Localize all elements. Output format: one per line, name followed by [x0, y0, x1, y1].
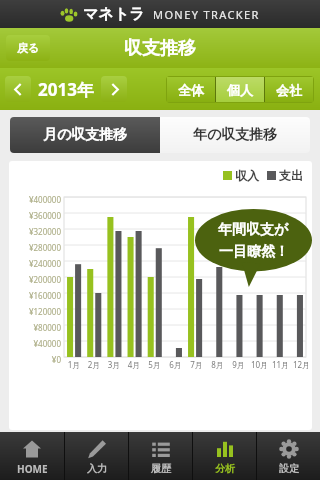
button[interactable]: 全体	[167, 77, 215, 102]
staticText: 6月	[165, 359, 186, 370]
staticText: ¥320000	[28, 226, 61, 237]
staticText: 7月	[186, 359, 207, 370]
staticText: ¥360000	[28, 210, 61, 221]
button[interactable]: 月の収支推移	[10, 117, 160, 153]
button[interactable]: 設定	[257, 432, 320, 480]
staticText: 一目瞭然！	[219, 243, 289, 261]
staticText: 支出	[276, 167, 304, 183]
staticText: ¥400000	[28, 194, 61, 205]
staticText: 12月	[291, 359, 312, 370]
staticText: 2013年	[38, 78, 94, 101]
staticText: 3月	[104, 359, 124, 370]
staticText: 入力	[87, 462, 107, 475]
staticText: ¥40000	[33, 338, 61, 349]
staticText: ¥240000	[28, 258, 61, 269]
button[interactable]: 履歴	[129, 432, 192, 480]
staticText: 1月	[64, 359, 84, 370]
staticText: HOME	[17, 462, 48, 476]
button[interactable]: 年の収支推移	[160, 117, 310, 153]
staticText: 収支推移	[124, 37, 196, 60]
staticText: 戻る	[17, 41, 40, 55]
staticText: 年の収支推移	[193, 126, 278, 144]
staticText: 全体	[178, 82, 204, 98]
staticText: 個人	[227, 82, 253, 98]
button[interactable]: 個人	[216, 77, 264, 102]
staticText: ¥160000	[28, 290, 61, 301]
staticText: 分析	[215, 462, 235, 475]
button[interactable]: Previous year	[5, 76, 31, 102]
staticText: 設定	[279, 462, 299, 475]
staticText: 5月	[144, 359, 165, 370]
staticText: ¥120000	[28, 306, 61, 317]
button[interactable]: HOME	[0, 432, 64, 480]
staticText: MONEY TRACKER	[153, 7, 260, 22]
staticText: 2月	[84, 359, 104, 370]
staticText: 月の収支推移	[43, 126, 128, 144]
staticText: ¥0	[51, 354, 61, 365]
staticText: 8月	[207, 359, 228, 370]
staticText: ¥80000	[33, 322, 61, 333]
staticText: 履歴	[151, 462, 171, 475]
staticText: ¥280000	[28, 242, 61, 253]
staticText: 4月	[124, 359, 144, 370]
staticText: マネトラ	[83, 5, 145, 24]
staticText: 10月	[249, 359, 270, 370]
staticText: ¥200000	[28, 274, 61, 285]
button[interactable]: 戻る	[6, 35, 50, 61]
staticText: 収入	[232, 167, 260, 183]
button[interactable]: 会社	[265, 77, 313, 102]
button[interactable]: 入力	[65, 432, 128, 480]
staticText: 11月	[270, 359, 291, 370]
button[interactable]: Next year	[101, 76, 127, 102]
staticText: 会社	[276, 82, 302, 98]
staticText: 年間収支が	[218, 221, 289, 239]
staticText: 9月	[228, 359, 249, 370]
button[interactable]: 分析	[193, 432, 256, 480]
